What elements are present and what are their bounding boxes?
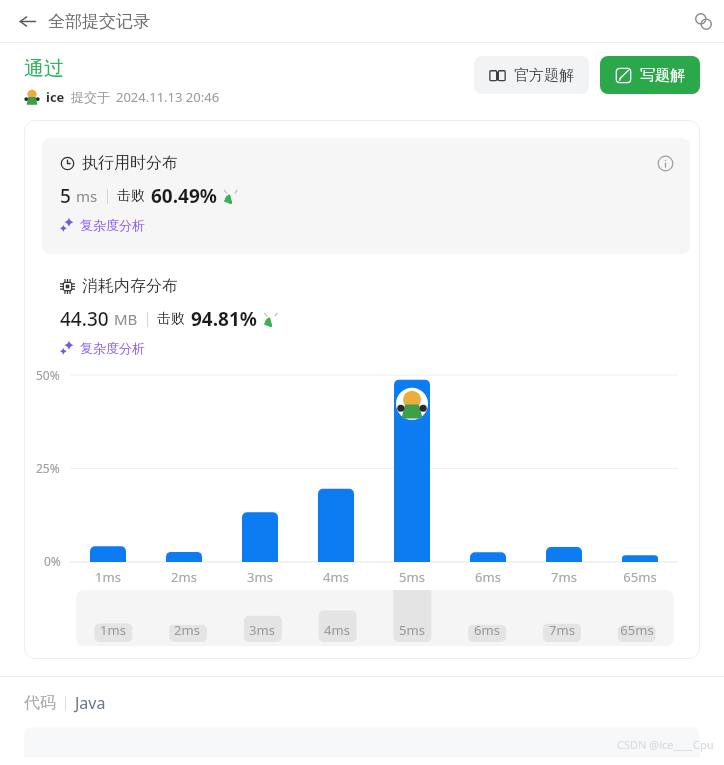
button[interactable]: 复杂度分析 — [60, 217, 145, 233]
staticText: 3ms — [249, 621, 275, 639]
staticText: 60.49% — [151, 183, 217, 209]
staticText: ms — [76, 186, 98, 206]
staticText: 击败 — [117, 187, 145, 205]
button[interactable]: 1ms — [76, 590, 674, 646]
staticText: 2ms — [174, 621, 200, 639]
staticText: 94.81% — [191, 306, 257, 332]
staticText: 65ms — [620, 621, 654, 639]
staticText: 1ms — [100, 621, 126, 639]
staticText: 消耗内存分布 — [82, 276, 178, 296]
staticText: 2ms — [171, 568, 197, 586]
staticText: 7ms — [549, 621, 575, 639]
staticText: 官方题解 — [514, 66, 574, 85]
button[interactable]: 写题解 — [600, 56, 700, 94]
staticText: 6ms — [475, 568, 501, 586]
staticText: 写题解 — [640, 66, 685, 85]
button[interactable]: 复杂度分析 — [60, 340, 145, 356]
staticText: 通过 — [24, 56, 64, 81]
staticText: 击败 — [157, 310, 185, 328]
staticText: 6ms — [474, 621, 500, 639]
staticText: 复杂度分析 — [80, 340, 145, 356]
staticText: 3ms — [247, 568, 273, 586]
staticText: 50% — [36, 367, 60, 383]
button[interactable]: Copy link — [686, 4, 720, 38]
staticText: 25% — [36, 460, 60, 476]
staticText: 5ms — [399, 568, 425, 586]
staticText: 5ms — [399, 621, 425, 639]
staticText: Java — [75, 692, 106, 714]
staticText: 执行用时分布 — [82, 153, 178, 173]
staticText: CSDN @ice____Cpu — [617, 737, 714, 752]
staticText: ice — [46, 88, 65, 106]
staticText: 代码 — [24, 693, 56, 713]
staticText: 复杂度分析 — [80, 217, 145, 233]
staticText: 提交于 — [71, 89, 110, 105]
button[interactable]: Back — [12, 6, 42, 36]
staticText: 5 — [60, 183, 71, 209]
staticText: 7ms — [551, 568, 577, 586]
staticText: 0% — [44, 553, 61, 569]
staticText: 44.30 — [60, 306, 109, 332]
staticText: 65ms — [623, 568, 657, 586]
staticText: 4ms — [324, 621, 350, 639]
button[interactable]: 官方题解 — [474, 56, 589, 94]
staticText: 4ms — [323, 568, 349, 586]
staticText: MB — [114, 309, 138, 329]
button[interactable]: Info — [654, 152, 676, 174]
staticText: 2024.11.13 20:46 — [116, 88, 220, 106]
staticText: 全部提交记录 — [48, 11, 150, 32]
staticText: 1ms — [95, 568, 121, 586]
